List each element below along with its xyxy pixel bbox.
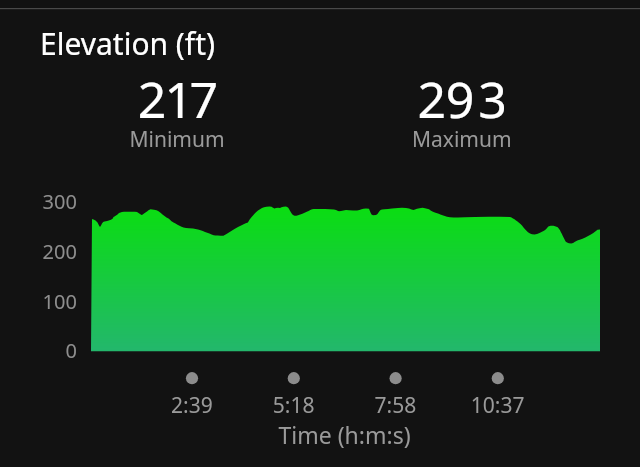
button[interactable]: Maximum elevation 293 feet [320,74,624,156]
button[interactable]: Split at 5:18 [266,366,322,414]
button[interactable]: Split at 7:58 [368,366,424,414]
button[interactable]: Elevation profile chart [16,172,624,372]
button[interactable]: Split at 10:37 [470,366,526,414]
button[interactable]: Split at 2:39 [164,366,220,414]
button[interactable]: Elevation (ft) [0,14,640,70]
button[interactable]: Minimum elevation 217 feet [16,74,320,156]
button[interactable]: Elevation summary card [0,0,640,467]
